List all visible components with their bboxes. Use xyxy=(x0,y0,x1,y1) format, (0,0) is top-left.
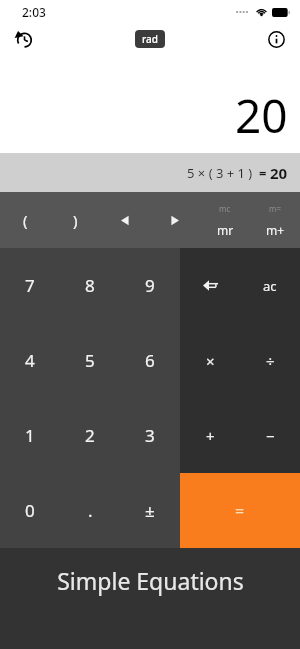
staticText: 20 xyxy=(270,163,288,183)
button[interactable]: 6 xyxy=(120,323,180,398)
staticText: mr xyxy=(217,222,234,238)
staticText: 8 xyxy=(85,274,95,297)
button[interactable]: Simple Equations xyxy=(0,548,300,649)
staticText: 9 xyxy=(145,274,155,297)
staticText: ac xyxy=(263,277,277,295)
button[interactable]: × xyxy=(180,323,240,398)
staticText: ) xyxy=(73,210,78,230)
button[interactable]: History xyxy=(8,24,40,54)
staticText: + xyxy=(206,426,215,446)
button[interactable]: 9 xyxy=(120,248,180,323)
button[interactable]: 0 xyxy=(0,473,60,548)
staticText: 6 xyxy=(145,349,155,372)
button[interactable]: 4 xyxy=(0,323,60,398)
staticText: 4 xyxy=(25,349,35,372)
staticText: m= xyxy=(269,203,282,214)
button[interactable]: rad xyxy=(135,30,165,48)
button[interactable]: 2 xyxy=(60,398,120,473)
button[interactable]: + xyxy=(180,398,240,473)
staticText: ÷ xyxy=(266,351,275,371)
button[interactable]: Info xyxy=(260,24,292,54)
button[interactable]: 1 xyxy=(0,398,60,473)
button[interactable]: Move cursor left xyxy=(100,192,150,248)
button[interactable]: 3 xyxy=(120,398,180,473)
button[interactable]: Move cursor right xyxy=(150,192,200,248)
staticText: 1 xyxy=(25,424,35,447)
staticText: − xyxy=(266,426,275,446)
staticText: m+ xyxy=(266,222,285,238)
staticText: 5 × ( 3 + 1 ) xyxy=(187,164,253,182)
button[interactable]: 5 × ( 3 + 1 ) xyxy=(0,153,300,192)
button[interactable]: ac xyxy=(240,248,300,323)
staticText: × xyxy=(206,351,215,371)
staticText: . xyxy=(88,499,93,522)
button[interactable]: mc xyxy=(200,192,250,248)
button[interactable]: ± xyxy=(120,473,180,548)
button[interactable]: = xyxy=(180,473,300,548)
staticText: ± xyxy=(145,499,155,522)
staticText: 2 xyxy=(85,424,95,447)
staticText: rad xyxy=(142,32,158,46)
staticText: 20 xyxy=(235,84,288,147)
staticText: 7 xyxy=(25,274,35,297)
button[interactable]: 8 xyxy=(60,248,120,323)
button[interactable]: ( xyxy=(0,192,50,248)
button[interactable]: − xyxy=(240,398,300,473)
button[interactable]: 5 xyxy=(60,323,120,398)
button[interactable]: ) xyxy=(50,192,100,248)
staticText: 3 xyxy=(145,424,155,447)
button[interactable]: m= xyxy=(250,192,300,248)
button[interactable]: . xyxy=(60,473,120,548)
button[interactable]: 7 xyxy=(0,248,60,323)
staticText: Simple Equations xyxy=(57,565,244,596)
staticText: 5 xyxy=(85,349,95,372)
staticText: ( xyxy=(23,210,28,230)
staticText: 0 xyxy=(25,499,35,522)
staticText: = xyxy=(235,500,245,522)
staticText: mc xyxy=(219,203,231,214)
button[interactable]: ÷ xyxy=(240,323,300,398)
staticText: = xyxy=(259,164,267,182)
staticText: 2:03 xyxy=(22,4,46,20)
button[interactable]: Backspace xyxy=(180,248,240,323)
